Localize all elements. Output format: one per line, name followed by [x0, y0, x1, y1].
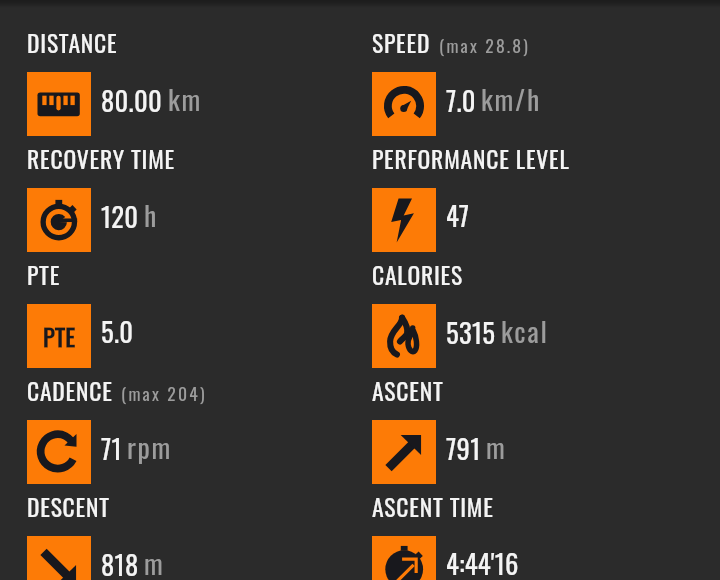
other: Speed — [372, 72, 436, 136]
staticText: rpm — [127, 426, 173, 467]
staticText: h — [144, 194, 158, 235]
button[interactable]: DESCENT — [27, 498, 372, 580]
staticText: PTE — [27, 257, 61, 292]
button[interactable]: SPEED — [372, 34, 720, 136]
button[interactable]: RECOVERY TIME — [27, 150, 372, 252]
other: Ascent — [372, 420, 436, 484]
staticText: 47 — [446, 195, 470, 234]
staticText: 71 — [101, 428, 122, 467]
other: Distance — [27, 72, 91, 136]
staticText: (max 204) — [121, 380, 207, 406]
button[interactable]: ASCENT — [372, 382, 720, 484]
staticText: 5.0 — [101, 311, 134, 350]
staticText: SPEED — [372, 25, 431, 60]
staticText: km/h — [481, 78, 541, 119]
other: Calories — [372, 304, 436, 368]
button[interactable]: CALORIES — [372, 266, 720, 368]
staticText: RECOVERY TIME — [27, 141, 175, 176]
staticText: kcal — [501, 310, 549, 351]
staticText: 5315 — [446, 312, 496, 351]
staticText: 80.00 — [101, 80, 163, 119]
staticText: ASCENT TIME — [372, 489, 494, 524]
staticText: (max 28.8) — [439, 32, 531, 58]
staticText: 791 — [446, 428, 481, 467]
other: Cadence — [27, 420, 91, 484]
staticText: CADENCE — [27, 373, 113, 408]
staticText: m — [144, 542, 165, 580]
other: Performance level — [372, 188, 436, 252]
staticText: CALORIES — [372, 257, 463, 292]
staticText: DISTANCE — [27, 25, 118, 60]
button[interactable]: CADENCE — [27, 382, 372, 484]
other: Descent — [27, 536, 91, 580]
staticText: ASCENT — [372, 373, 444, 408]
staticText: 7.0 — [446, 80, 476, 119]
staticText: m — [486, 426, 507, 467]
other: PTE — [27, 304, 91, 368]
button[interactable]: PERFORMANCE LEVEL — [372, 150, 720, 252]
staticText: km — [168, 78, 203, 119]
staticText: 120 — [101, 196, 139, 235]
other: Ascent time — [372, 536, 436, 580]
staticText: 4:44'16 — [446, 543, 519, 580]
button[interactable]: DISTANCE — [27, 34, 372, 136]
other: Recovery time — [27, 188, 91, 252]
staticText: PTE — [43, 318, 76, 354]
staticText: 818 — [101, 544, 139, 580]
button[interactable]: ASCENT TIME — [372, 498, 720, 580]
staticText: PERFORMANCE LEVEL — [372, 141, 570, 176]
button[interactable]: PTE — [27, 266, 372, 368]
staticText: DESCENT — [27, 489, 110, 524]
